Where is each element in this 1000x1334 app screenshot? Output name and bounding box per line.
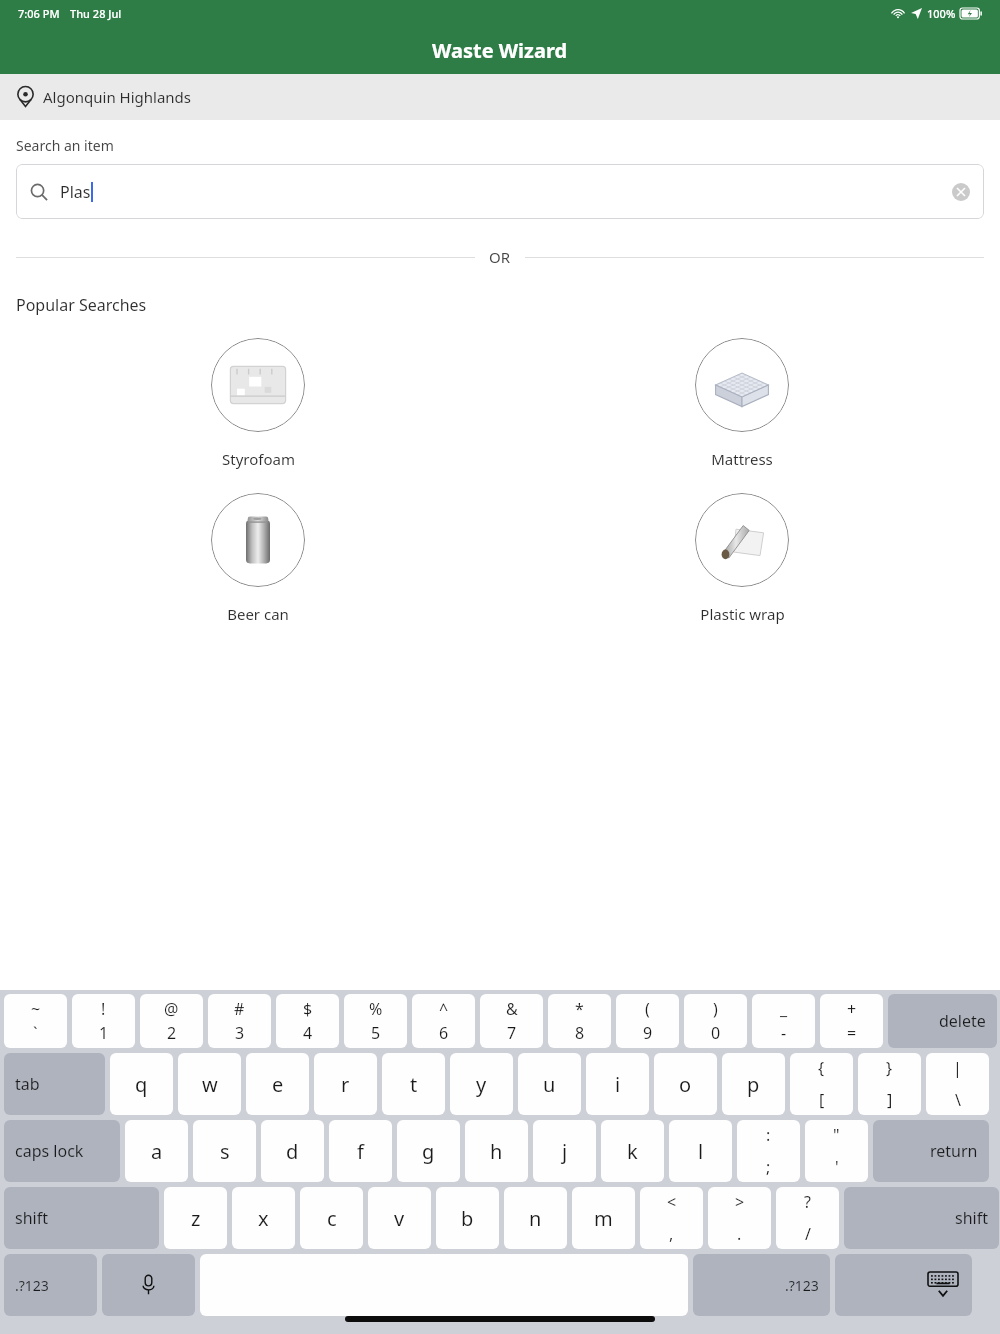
staticText: Thu 28 Jul: [70, 6, 122, 21]
button[interactable]: r: [314, 1053, 377, 1115]
button[interactable]: y: [450, 1053, 513, 1115]
staticText: 8: [575, 1022, 585, 1044]
button[interactable]: tab: [4, 1053, 105, 1115]
button[interactable]: 6 ^: [412, 994, 475, 1048]
button[interactable]: d: [261, 1120, 324, 1182]
button[interactable]: n: [504, 1187, 567, 1249]
staticText: shift: [955, 1207, 988, 1229]
staticText: j: [562, 1138, 568, 1165]
button[interactable]: t: [382, 1053, 445, 1115]
button[interactable]: f: [329, 1120, 392, 1182]
button[interactable]: b: [436, 1187, 499, 1249]
button[interactable]: m: [572, 1187, 635, 1249]
button[interactable]: = +: [820, 994, 883, 1048]
button[interactable]: .?123: [4, 1254, 97, 1316]
button[interactable]: 0 ): [684, 994, 747, 1048]
staticText: %: [369, 998, 383, 1020]
staticText: delete: [939, 1010, 986, 1032]
button[interactable]: Styrofoam: [16, 338, 500, 469]
button[interactable]: ` ~: [4, 994, 67, 1048]
button[interactable]: caps lock: [4, 1120, 120, 1182]
staticText: w: [202, 1071, 218, 1098]
staticText: i: [615, 1071, 621, 1098]
staticText: 7:06 PM: [18, 6, 60, 21]
button[interactable]: .?123: [693, 1254, 830, 1316]
button[interactable]: Algonquin Highlands: [0, 74, 1000, 120]
staticText: s: [220, 1138, 230, 1165]
button[interactable]: a: [125, 1120, 188, 1182]
staticText: \: [955, 1089, 961, 1111]
button[interactable]: , <: [640, 1187, 703, 1249]
staticText: !: [101, 998, 106, 1020]
staticText: a: [151, 1138, 163, 1165]
button[interactable]: Clear search: [952, 183, 970, 201]
staticText: d: [286, 1138, 299, 1165]
staticText: ,: [669, 1223, 674, 1245]
button[interactable]: Plas: [16, 164, 984, 219]
button[interactable]: 7 &: [480, 994, 543, 1048]
button[interactable]: l: [669, 1120, 732, 1182]
button[interactable]: delete: [888, 994, 997, 1048]
staticText: Algonquin Highlands: [43, 87, 192, 107]
button[interactable]: 3 #: [208, 994, 271, 1048]
button[interactable]: ; :: [737, 1120, 800, 1182]
button[interactable]: Beer can: [16, 493, 500, 624]
button[interactable]: e: [246, 1053, 309, 1115]
button[interactable]: v: [368, 1187, 431, 1249]
staticText: k: [627, 1138, 638, 1165]
button[interactable]: Mattress: [500, 338, 984, 469]
button[interactable]: 2 @: [140, 994, 203, 1048]
button[interactable]: k: [601, 1120, 664, 1182]
button[interactable]: shift: [4, 1187, 159, 1249]
staticText: &: [506, 998, 518, 1020]
staticText: n: [529, 1205, 542, 1232]
button[interactable]: g: [397, 1120, 460, 1182]
button[interactable]: [ {: [790, 1053, 853, 1115]
button[interactable]: s: [193, 1120, 256, 1182]
staticText: return: [930, 1140, 978, 1162]
staticText: 5: [371, 1022, 381, 1044]
button[interactable]: ] }: [858, 1053, 921, 1115]
button[interactable]: p: [722, 1053, 785, 1115]
button[interactable]: ' ": [805, 1120, 868, 1182]
staticText: Popular Searches: [16, 294, 147, 316]
staticText: u: [543, 1071, 556, 1098]
button[interactable]: i: [586, 1053, 649, 1115]
button[interactable]: j: [533, 1120, 596, 1182]
staticText: o: [679, 1071, 692, 1098]
button[interactable]: q: [110, 1053, 173, 1115]
button[interactable]: shift: [844, 1187, 999, 1249]
button[interactable]: 9 (: [616, 994, 679, 1048]
staticText: Waste Wizard: [432, 37, 568, 64]
button[interactable]: . >: [708, 1187, 771, 1249]
button[interactable]: 8 *: [548, 994, 611, 1048]
button[interactable]: h: [465, 1120, 528, 1182]
staticText: Styrofoam: [222, 449, 295, 469]
staticText: c: [327, 1205, 337, 1232]
staticText: :: [766, 1124, 771, 1146]
button[interactable]: 1 !: [72, 994, 135, 1048]
staticText: .: [737, 1223, 742, 1245]
button[interactable]: u: [518, 1053, 581, 1115]
button[interactable]: - _: [752, 994, 815, 1048]
button[interactable]: o: [654, 1053, 717, 1115]
button[interactable]: 5 %: [344, 994, 407, 1048]
staticText: ~: [31, 998, 41, 1020]
staticText: 3: [235, 1022, 245, 1044]
button[interactable]: Dictation: [102, 1254, 195, 1316]
staticText: -: [781, 1022, 787, 1044]
button[interactable]: x: [232, 1187, 295, 1249]
button[interactable]: c: [300, 1187, 363, 1249]
staticText: ?: [804, 1191, 811, 1213]
button[interactable]: Hide keyboard: [835, 1254, 972, 1316]
button[interactable]: / ?: [776, 1187, 839, 1249]
staticText: m: [594, 1205, 613, 1232]
button[interactable]: w: [178, 1053, 241, 1115]
button[interactable]: return: [873, 1120, 989, 1182]
staticText: 6: [439, 1022, 449, 1044]
button[interactable]: 4 $: [276, 994, 339, 1048]
button[interactable]: z: [164, 1187, 227, 1249]
button[interactable]: \ |: [926, 1053, 989, 1115]
button[interactable]: Plastic wrap: [500, 493, 984, 624]
